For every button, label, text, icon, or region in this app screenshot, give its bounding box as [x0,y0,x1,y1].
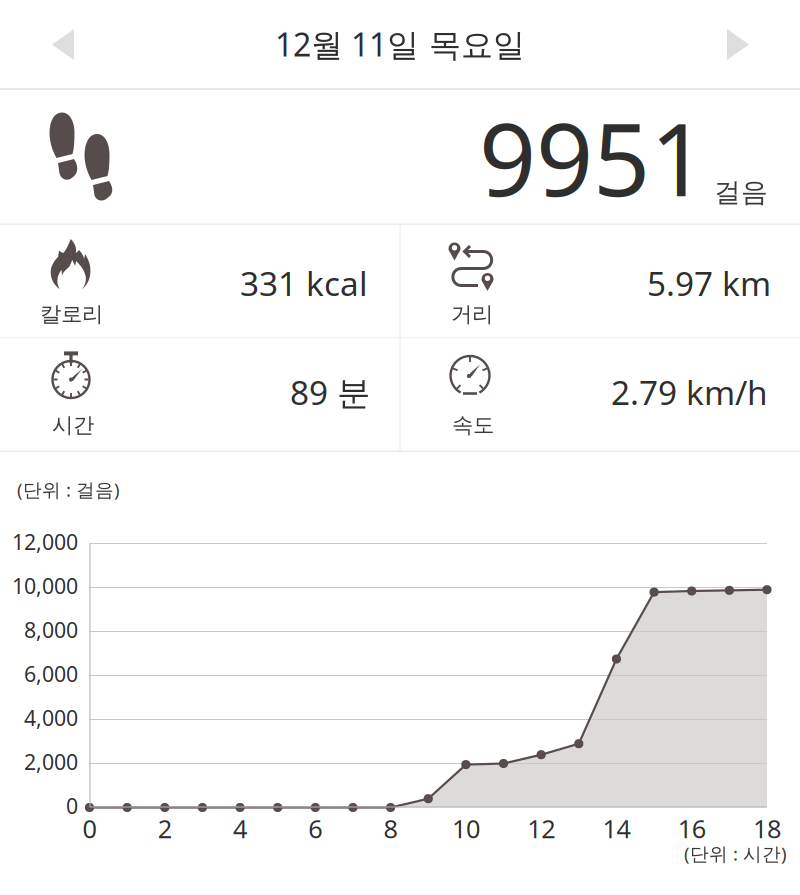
staticText: 16 [678,811,706,845]
staticText: 2 [158,811,172,845]
staticText: 9951 [479,91,707,224]
staticText: (단위 : 시간) [684,841,787,866]
button[interactable]: 시간 [0,338,399,450]
staticText: (단위 : 걸음) [17,477,120,502]
button[interactable]: Previous day [24,14,104,74]
staticText: 걸음 [714,176,768,209]
staticText: 0 [66,791,78,820]
button[interactable]: Next day [698,14,778,74]
staticText: 칼로리 [40,301,103,327]
staticText: 6 [308,811,322,845]
staticText: 4,000 [24,703,78,732]
staticText: 12 [527,811,555,845]
staticText: 14 [602,811,630,845]
button[interactable]: 칼로리 [0,225,399,337]
staticText: 6,000 [24,659,78,688]
staticText: 8 [384,811,398,845]
button[interactable]: 속도 [401,338,800,450]
staticText: 10 [452,811,480,845]
staticText: 속도 [452,412,494,438]
staticText: 12,000 [12,527,78,556]
staticText: 5.97 km [647,261,771,305]
staticText: 거리 [451,301,493,327]
staticText: 2.79 km/h [611,370,768,414]
staticText: 12월 11일 목요일 [275,23,525,65]
staticText: 0 [82,811,96,845]
button[interactable]: 거리 [401,225,800,337]
staticText: 4 [233,811,247,845]
staticText: 331 kcal [240,261,368,305]
staticText: 18 [753,811,781,845]
staticText: 시간 [52,412,94,438]
staticText: 10,000 [12,571,78,600]
staticText: 8,000 [24,615,78,644]
staticText: 89 분 [290,370,370,414]
staticText: 2,000 [24,747,78,776]
